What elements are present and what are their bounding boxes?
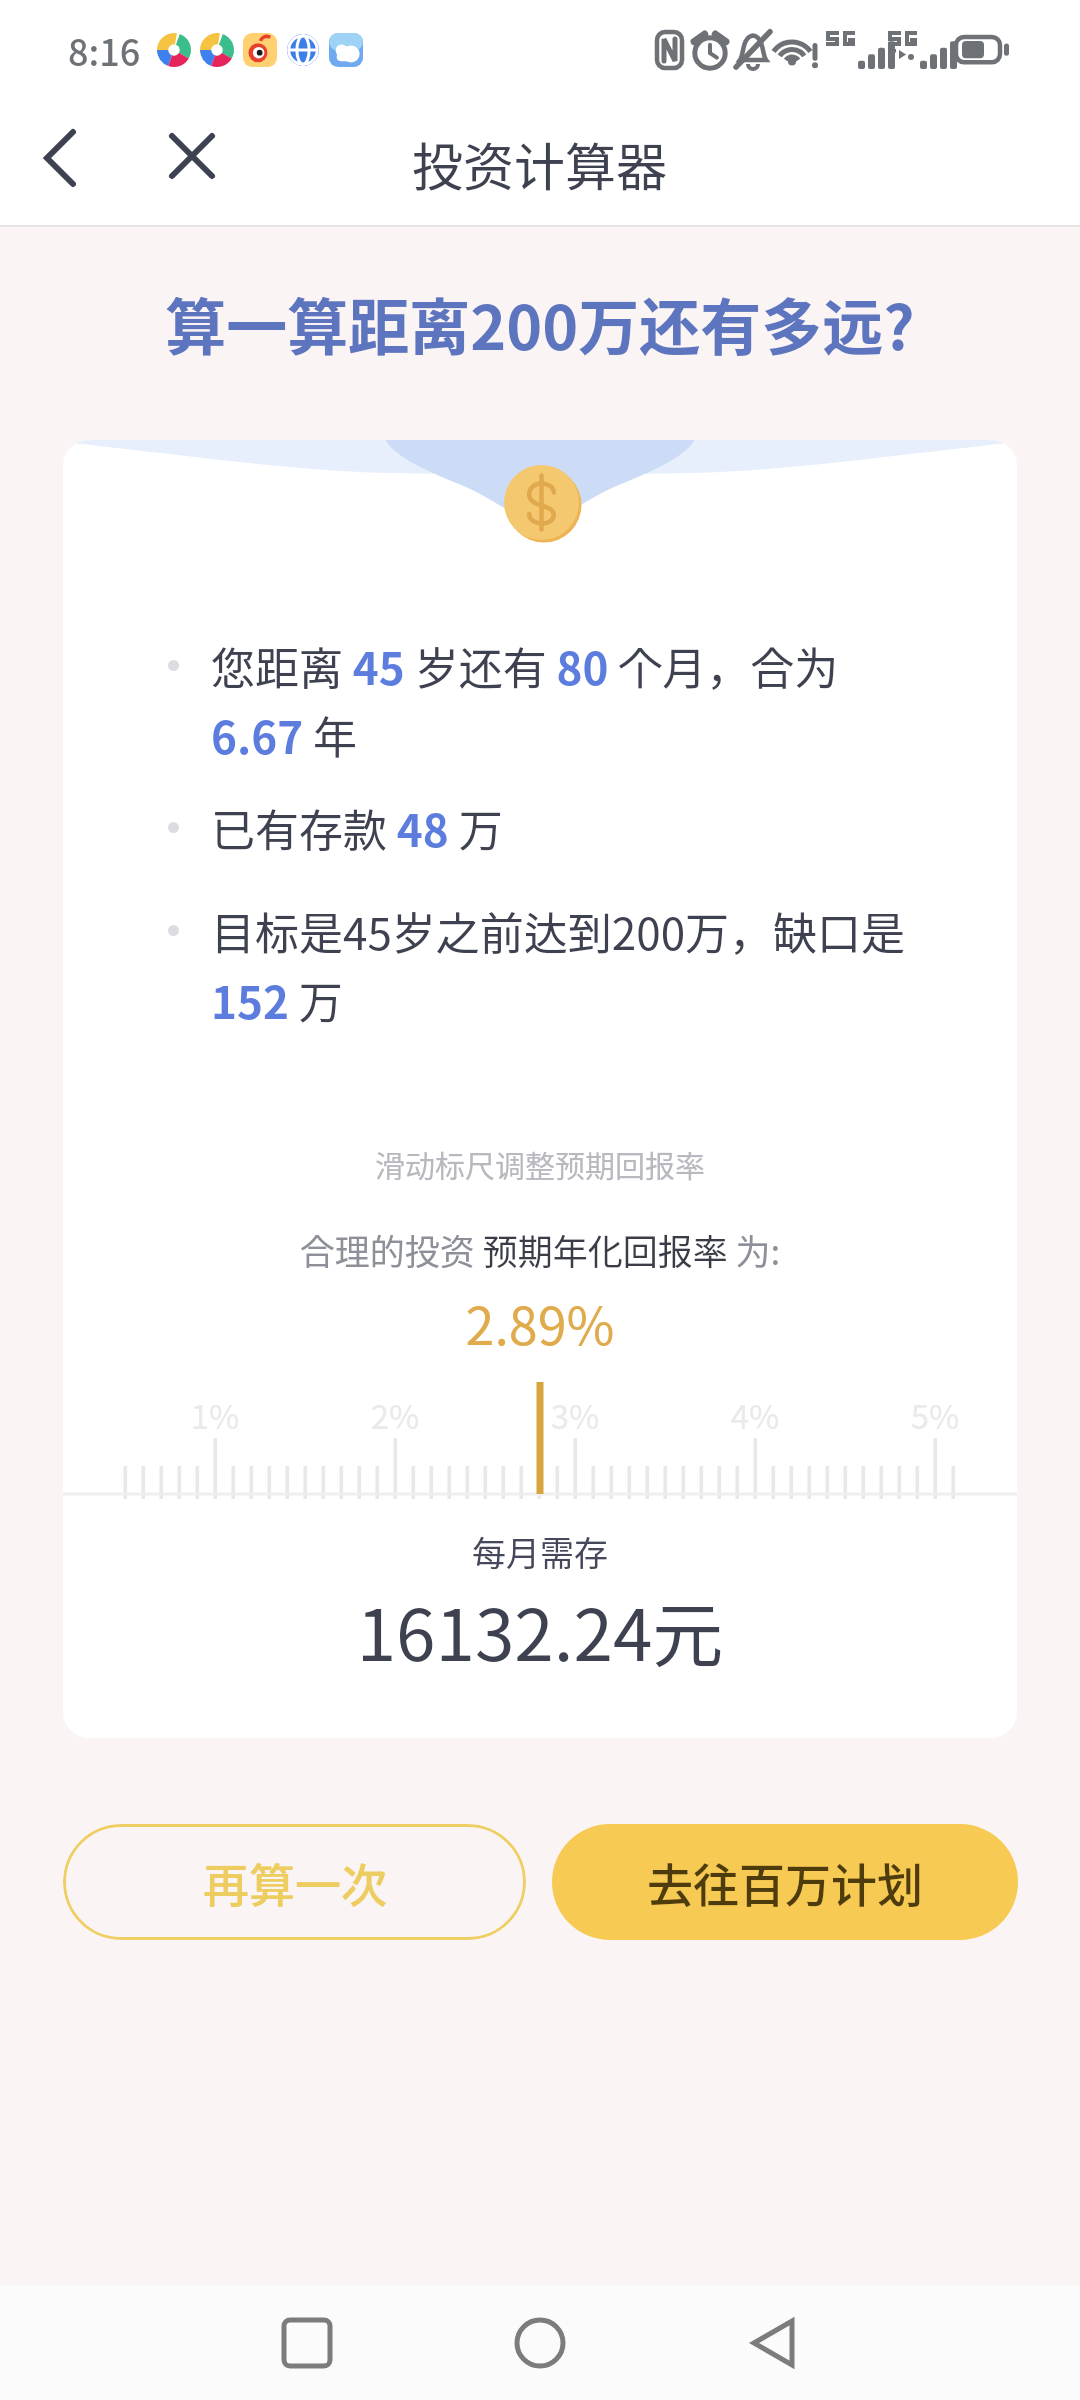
- staticText: 再算一次: [203, 1849, 387, 1916]
- staticText: 5%: [890, 1391, 980, 1439]
- button[interactable]: Back: [18, 116, 102, 200]
- button[interactable]: 去往百万计划: [552, 1824, 1018, 1940]
- staticText: 2.89%: [63, 1285, 1017, 1360]
- staticText: 16132.24元: [63, 1579, 1017, 1682]
- staticText: 去往百万计划: [647, 1849, 923, 1916]
- staticText: 已有存款 48 万: [211, 796, 911, 860]
- staticText: 合理的投资 预期年化回报率 为:: [63, 1224, 1017, 1275]
- button[interactable]: Back: [725, 2295, 821, 2391]
- staticText: 8:16: [68, 24, 141, 76]
- staticText: 每月需存: [63, 1527, 1017, 1576]
- staticText: 2%: [350, 1391, 440, 1439]
- button[interactable]: Close: [150, 114, 234, 198]
- button[interactable]: Home: [492, 2295, 588, 2391]
- staticText: 投资计算器: [412, 127, 668, 201]
- staticText: 算一算距离200万还有多远?: [0, 279, 1080, 367]
- staticText: 目标是45岁之前达到200万，缺口是 152 万: [211, 899, 911, 1032]
- button[interactable]: 再算一次: [63, 1824, 526, 1940]
- staticText: 1%: [170, 1391, 260, 1439]
- button[interactable]: Recents: [259, 2295, 355, 2391]
- staticText: 您距离 45 岁还有 80 个月，合为 6.67 年: [211, 634, 911, 767]
- staticText: 3%: [530, 1391, 620, 1439]
- staticText: 4%: [710, 1391, 800, 1439]
- staticText: 滑动标尺调整预期回报率: [63, 1142, 1017, 1185]
